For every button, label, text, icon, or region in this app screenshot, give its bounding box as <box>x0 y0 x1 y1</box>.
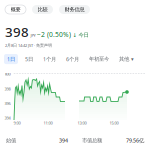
button[interactable]: 年初至今 <box>86 54 112 64</box>
button[interactable]: 6个月 <box>63 54 82 64</box>
button[interactable]: 1日 <box>4 54 18 64</box>
staticText: 1个月 <box>43 55 56 63</box>
staticText: 15:00 <box>109 120 118 126</box>
staticText: 79.56亿 <box>126 137 144 144</box>
staticText: 400 <box>4 71 10 77</box>
button[interactable]: 5日 <box>22 54 36 64</box>
staticText: 概要 <box>10 6 20 13</box>
staticText: 396 <box>4 101 10 106</box>
staticText: 市值总额 <box>82 137 102 144</box>
staticText: 年初至今 <box>89 56 109 62</box>
staticText: JPY <box>30 33 35 38</box>
staticText: 财务信息 <box>64 6 84 13</box>
staticText: −2 (0.50%) <box>37 30 71 39</box>
button[interactable]: 1个月 <box>40 54 59 64</box>
staticText: 6个月 <box>66 55 79 63</box>
staticText: 2月8日 14:42 JST · 免责声明 <box>5 43 52 48</box>
button[interactable]: 其他 ▾ <box>116 54 137 64</box>
staticText: 398 <box>4 86 10 92</box>
staticText: 398 <box>5 23 29 41</box>
staticText: 其他 ▾ <box>119 56 134 62</box>
staticText: ↓ 今日 <box>72 32 88 38</box>
staticText: 1日 <box>7 55 15 63</box>
button[interactable]: 财务信息 <box>59 5 90 14</box>
staticText: 9:00 <box>13 120 20 126</box>
staticText: 5日 <box>25 55 33 63</box>
staticText: 394 <box>59 137 68 144</box>
button[interactable]: 比较 <box>32 5 53 14</box>
staticText: 11:00 <box>43 120 52 126</box>
staticText: 394 <box>4 115 10 121</box>
staticText: 13:00 <box>77 120 86 126</box>
staticText: 始值 <box>6 137 16 144</box>
staticText: 比较 <box>37 6 47 13</box>
button[interactable]: 概要 <box>5 5 26 14</box>
